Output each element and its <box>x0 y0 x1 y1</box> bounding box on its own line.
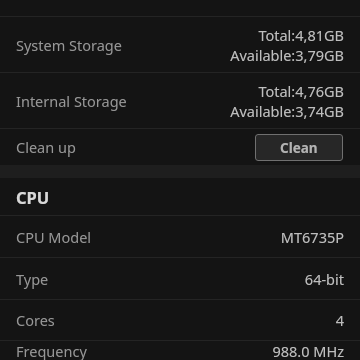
staticText: CPU <box>16 186 50 208</box>
staticText: Available:3,79GB <box>230 45 344 65</box>
button[interactable]: Clean <box>255 134 343 161</box>
button[interactable]: System Storage <box>0 17 360 72</box>
staticText: Type <box>16 269 304 289</box>
button[interactable]: Type <box>0 258 360 299</box>
staticText: Frequency <box>16 341 272 360</box>
staticText: 988.0 MHz <box>272 341 344 360</box>
staticText: Available:3,74GB <box>230 101 344 121</box>
staticText: Total:4,76GB <box>258 81 344 101</box>
staticText: 4 <box>335 310 344 330</box>
staticText: CPU Model <box>16 227 280 247</box>
staticText: Clean up <box>16 137 255 157</box>
staticText: Cores <box>16 310 335 330</box>
staticText: System Storage <box>16 35 230 55</box>
button[interactable]: Frequency <box>0 341 360 360</box>
button[interactable]: Cores <box>0 300 360 340</box>
button[interactable]: Internal Storage <box>0 73 360 128</box>
staticText: Clean <box>280 139 318 157</box>
staticText: MT6735P <box>280 227 344 247</box>
button[interactable]: CPU Model <box>0 216 360 257</box>
staticText: Internal Storage <box>16 91 230 111</box>
staticText: Total:4,81GB <box>258 25 344 45</box>
staticText: 64-bit <box>304 269 344 289</box>
